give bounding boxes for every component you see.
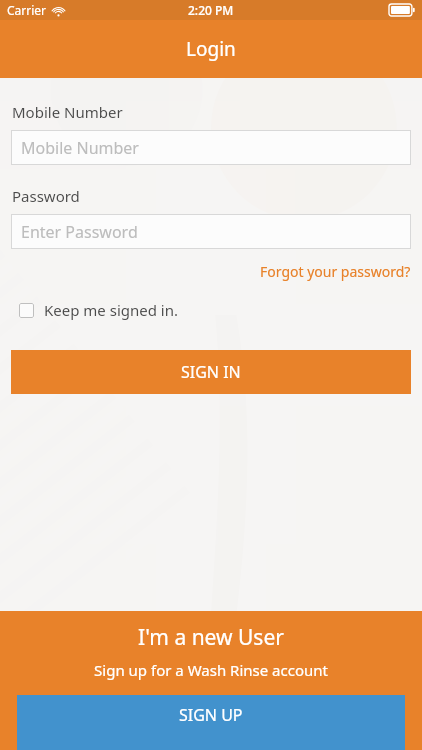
staticText: Mobile Number: [12, 102, 123, 122]
staticText: Sign up for a Wash Rinse account: [94, 660, 328, 680]
button[interactable]: Keep me signed in.: [0, 297, 191, 323]
button[interactable]: Forgot your password?: [260, 260, 422, 283]
staticText: SIGN UP: [179, 704, 243, 726]
staticText: Login: [186, 36, 236, 62]
button[interactable]: Mobile Number: [11, 130, 411, 165]
staticText: Enter Password: [21, 221, 138, 243]
staticText: SIGN IN: [181, 361, 241, 383]
staticText: Forgot your password?: [260, 262, 411, 281]
staticText: Mobile Number: [21, 137, 139, 159]
button[interactable]: Enter Password: [11, 214, 411, 249]
button[interactable]: SIGN UP: [17, 695, 405, 750]
staticText: I'm a new User: [138, 623, 284, 652]
staticText: Keep me signed in.: [44, 300, 179, 320]
staticText: Carrier: [7, 2, 47, 18]
staticText: Password: [12, 186, 80, 206]
button[interactable]: SIGN IN: [11, 350, 411, 394]
staticText: 2:20 PM: [188, 2, 234, 18]
